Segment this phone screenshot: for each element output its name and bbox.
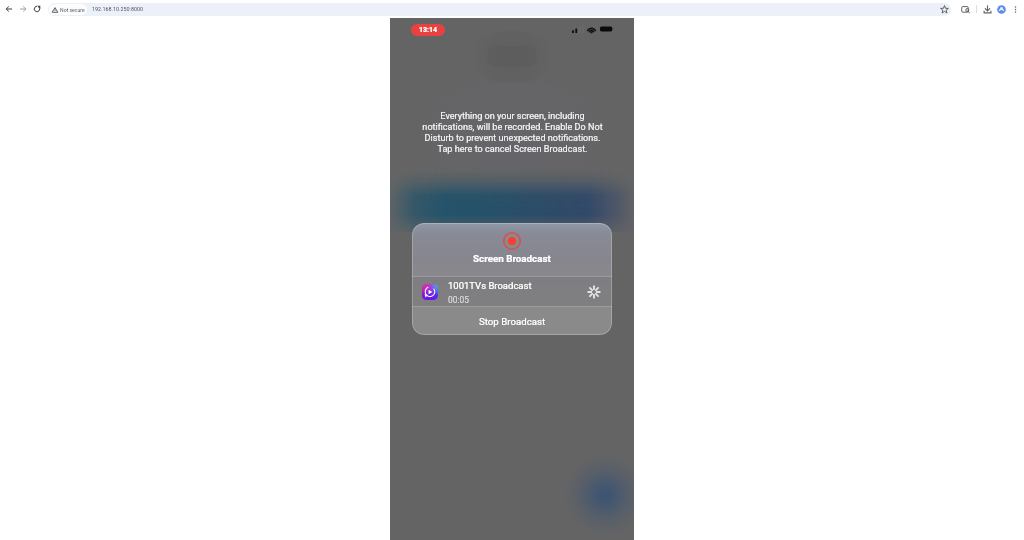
button[interactable]: Everything on your screen, including not… (402, 111, 622, 155)
staticText: 00:05 (448, 295, 469, 305)
staticText: 1001TVs Broadcast (448, 280, 532, 291)
button[interactable]: Not secure (49, 4, 87, 15)
button[interactable]: Back (2, 2, 16, 16)
staticText: Everything on your screen, including not… (422, 111, 603, 155)
staticText: Not secure (60, 7, 85, 13)
button[interactable]: Forward (16, 2, 30, 16)
button[interactable]: More options (1008, 2, 1022, 16)
staticText: Stop Broadcast (479, 316, 546, 327)
button[interactable]: 1001TVs Broadcast (412, 277, 612, 306)
button[interactable]: Search tabs (958, 2, 972, 16)
button[interactable]: Stop Broadcast (412, 307, 612, 335)
button[interactable]: Bookmark (937, 2, 951, 16)
staticText: Screen Broadcast (473, 253, 551, 264)
button[interactable] (48, 3, 951, 16)
button[interactable]: Downloads (980, 2, 994, 16)
staticText: 13:14 (419, 26, 438, 34)
button[interactable]: Reload (30, 2, 44, 16)
staticText: 192.168.10.250:8000 (92, 6, 144, 12)
button[interactable]: Profile (994, 2, 1008, 16)
